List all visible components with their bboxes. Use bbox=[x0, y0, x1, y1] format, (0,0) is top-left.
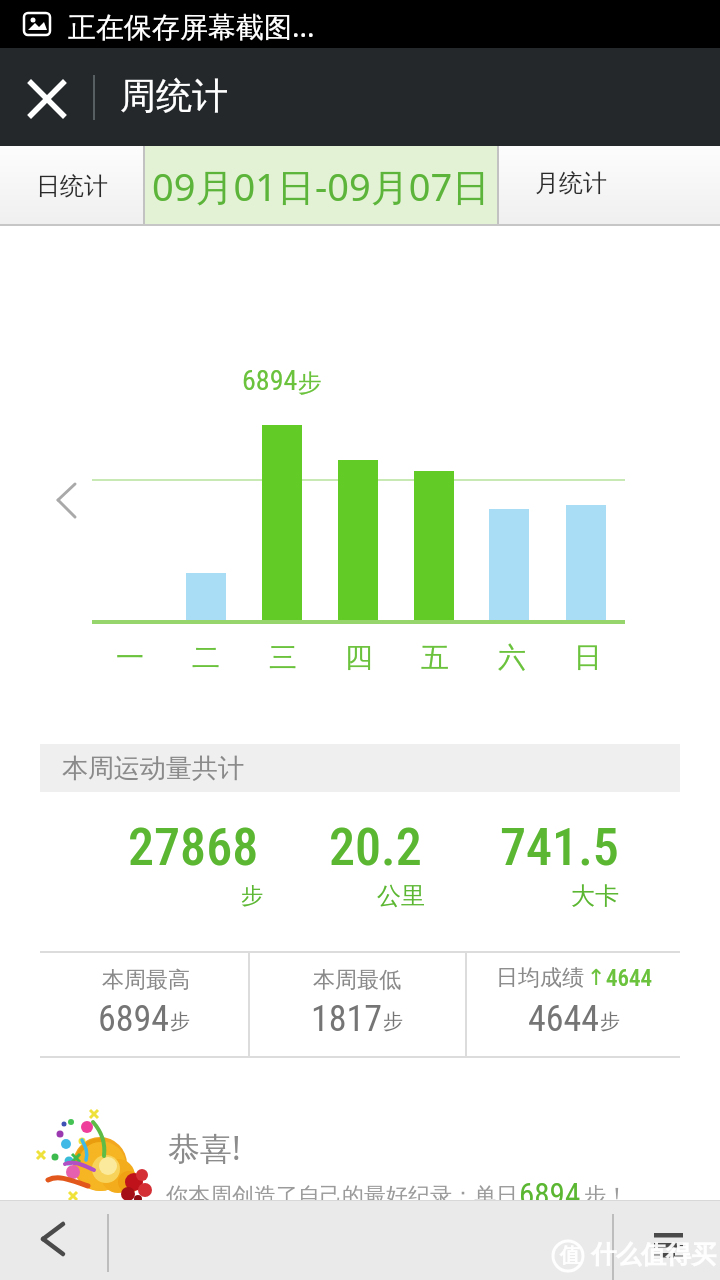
button[interactable] bbox=[18, 70, 76, 128]
staticText: 741.5 bbox=[500, 817, 619, 878]
staticText: 步 bbox=[600, 1009, 620, 1034]
button[interactable] bbox=[20, 1208, 86, 1272]
staticText: 日均成绩 bbox=[496, 964, 584, 992]
staticText: 日 bbox=[574, 640, 602, 675]
button[interactable]: 日统计 bbox=[0, 146, 143, 226]
staticText: 你本周创造了自己的最好纪录：单日 bbox=[166, 1182, 518, 1210]
button[interactable]: 09月01日-09月07日 bbox=[145, 146, 497, 226]
button[interactable]: 月统计 bbox=[499, 146, 720, 226]
staticText: 恭喜! bbox=[168, 1126, 241, 1170]
staticText: 步 bbox=[241, 882, 263, 910]
staticText: 6894 bbox=[98, 998, 170, 1040]
staticText: 本周最低 bbox=[313, 966, 401, 994]
staticText: 五 bbox=[421, 640, 449, 675]
staticText: 1817 bbox=[311, 998, 383, 1040]
staticText: 六 bbox=[498, 640, 526, 675]
staticText: 公里 bbox=[377, 881, 425, 911]
staticText: ↑ bbox=[587, 965, 606, 991]
staticText: 值 bbox=[560, 1243, 580, 1268]
staticText: 20.2 bbox=[329, 817, 422, 878]
staticText: 大卡 bbox=[571, 881, 619, 911]
staticText: 6894 bbox=[242, 364, 298, 397]
staticText: 4644 bbox=[606, 965, 653, 992]
staticText: 本周运动量共计 bbox=[62, 752, 244, 785]
staticText: 本周最高 bbox=[102, 966, 190, 994]
staticText: 日统计 bbox=[36, 171, 108, 201]
staticText: 二 bbox=[192, 640, 220, 675]
staticText: 步 bbox=[170, 1009, 190, 1034]
staticText: 27868 bbox=[128, 817, 259, 878]
staticText: 正在保存屏幕截图... bbox=[68, 7, 315, 45]
staticText: 步 bbox=[383, 1009, 403, 1034]
button[interactable] bbox=[630, 1208, 700, 1272]
staticText: 一 bbox=[116, 640, 144, 675]
staticText: 步！ bbox=[584, 1182, 628, 1210]
staticText: 周统计 bbox=[120, 73, 228, 118]
staticText: 三 bbox=[269, 640, 297, 675]
staticText: 4644 bbox=[528, 998, 600, 1040]
staticText: 步 bbox=[298, 368, 322, 398]
staticText: 09月01日-09月07日 bbox=[152, 160, 491, 212]
staticText: 四 bbox=[345, 640, 373, 675]
staticText: 月统计 bbox=[535, 168, 607, 198]
staticText: 6894 bbox=[519, 1176, 581, 1212]
staticText: 什么值得买 bbox=[591, 1239, 716, 1270]
